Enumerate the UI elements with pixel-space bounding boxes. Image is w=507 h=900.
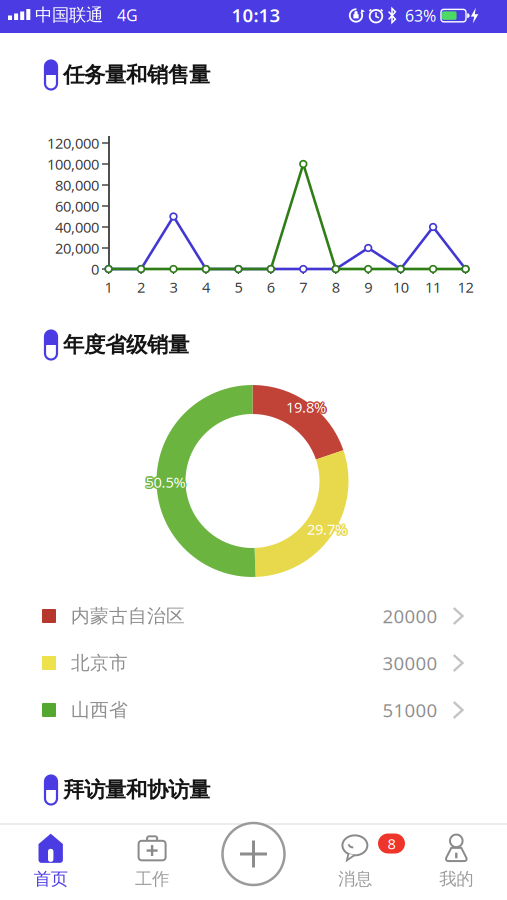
staticText: 8 bbox=[332, 277, 340, 297]
staticText: 6 bbox=[267, 277, 275, 297]
staticText: 80,000 bbox=[55, 175, 99, 195]
staticText: 19.8% bbox=[286, 399, 326, 418]
staticText: 9 bbox=[364, 277, 372, 297]
staticText: 19.8% bbox=[285, 397, 325, 417]
staticText: 4G bbox=[117, 4, 138, 26]
staticText: 29.7% bbox=[308, 520, 348, 540]
staticText: 120,000 bbox=[47, 133, 99, 153]
staticText: 2 bbox=[137, 277, 145, 297]
staticText: 12 bbox=[458, 277, 474, 297]
staticText: 29.7% bbox=[306, 518, 346, 538]
staticText: 50.5% bbox=[144, 472, 184, 492]
staticText: 50.5% bbox=[145, 472, 185, 492]
button[interactable]: 消息 bbox=[305, 826, 405, 896]
staticText: 3 bbox=[169, 277, 177, 297]
staticText: 50.5% bbox=[144, 473, 184, 493]
button[interactable]: 工作 bbox=[102, 826, 202, 896]
staticText: 29.7% bbox=[306, 519, 346, 539]
button[interactable]: 北京市 bbox=[0, 639, 507, 686]
staticText: 50.5% bbox=[145, 474, 185, 493]
staticText: 10:13 bbox=[231, 3, 280, 27]
staticText: 消息 bbox=[338, 868, 372, 890]
staticText: 29.7% bbox=[308, 519, 348, 539]
staticText: 5 bbox=[234, 277, 242, 297]
staticText: 63% bbox=[405, 5, 436, 26]
staticText: 北京市 bbox=[71, 651, 128, 674]
staticText: 拜访量和协访量 bbox=[63, 777, 210, 803]
staticText: 4 bbox=[202, 277, 210, 297]
staticText: 19.8% bbox=[287, 396, 327, 416]
staticText: 29.7% bbox=[308, 518, 348, 538]
staticText: 40,000 bbox=[55, 217, 99, 237]
staticText: 首页 bbox=[34, 868, 68, 890]
staticText: 8 bbox=[387, 834, 395, 853]
staticText: 29.7% bbox=[307, 518, 347, 537]
staticText: 29.7% bbox=[306, 520, 346, 540]
staticText: 内蒙古自治区 bbox=[71, 604, 185, 627]
button[interactable]: 我的 bbox=[406, 826, 506, 896]
staticText: 30000 bbox=[382, 651, 437, 675]
staticText: 19.8% bbox=[285, 398, 325, 418]
staticText: 10 bbox=[393, 277, 409, 297]
button[interactable]: 山西省 bbox=[0, 686, 507, 733]
staticText: 29.7% bbox=[307, 521, 347, 540]
button[interactable]: 添加 bbox=[222, 823, 284, 885]
staticText: 11 bbox=[425, 277, 441, 297]
staticText: 19.8% bbox=[285, 396, 325, 416]
staticText: 任务量和销售量 bbox=[63, 62, 210, 88]
staticText: 50.5% bbox=[147, 472, 187, 492]
staticText: 19.8% bbox=[286, 396, 326, 415]
staticText: 0 bbox=[91, 259, 99, 279]
staticText: 60,000 bbox=[55, 196, 99, 216]
staticText: 50.5% bbox=[145, 471, 185, 490]
staticText: 20000 bbox=[382, 604, 437, 628]
staticText: 50.5% bbox=[146, 471, 186, 491]
staticText: 20,000 bbox=[55, 238, 99, 258]
staticText: 29.7% bbox=[307, 519, 347, 539]
staticText: 工作 bbox=[135, 868, 169, 890]
staticText: 100,000 bbox=[47, 154, 99, 174]
staticText: 山西省 bbox=[71, 698, 128, 721]
staticText: 19.8% bbox=[286, 397, 326, 417]
staticText: 19.8% bbox=[287, 398, 327, 418]
staticText: 19.8% bbox=[287, 397, 327, 417]
staticText: 年度省级销量 bbox=[63, 332, 189, 358]
staticText: 51000 bbox=[382, 698, 437, 722]
staticText: 50.5% bbox=[144, 471, 184, 491]
button[interactable]: 内蒙古自治区 bbox=[0, 592, 507, 639]
staticText: 1 bbox=[105, 277, 113, 297]
staticText: 中国联通 bbox=[35, 4, 103, 26]
staticText: 50.5% bbox=[146, 473, 186, 493]
staticText: 7 bbox=[299, 277, 307, 297]
button[interactable]: 首页 bbox=[1, 826, 101, 896]
staticText: 我的 bbox=[439, 868, 473, 890]
